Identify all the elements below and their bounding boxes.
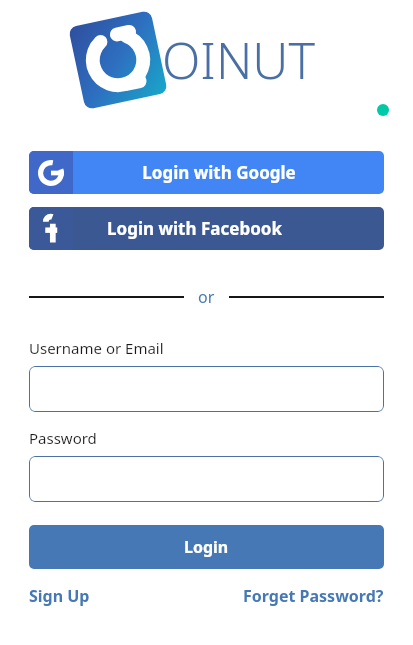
staticText: Sign Up	[29, 585, 90, 607]
staticText: or	[198, 286, 215, 308]
button[interactable]	[29, 456, 384, 502]
staticText: Password	[29, 428, 97, 448]
button[interactable]: Login with Google	[29, 151, 384, 194]
staticText: Login	[184, 536, 229, 558]
button[interactable]: Forget Password?	[243, 585, 384, 607]
staticText: Login with Google	[142, 161, 296, 184]
button[interactable]: Sign Up	[29, 585, 90, 607]
button[interactable]	[29, 366, 384, 412]
button[interactable]: Login	[29, 525, 384, 569]
staticText: Login with Facebook	[107, 217, 282, 240]
staticText: OINUT	[162, 26, 315, 94]
staticText: Forget Password?	[243, 585, 384, 607]
button[interactable]: Login with Facebook	[29, 207, 384, 250]
staticText: Username or Email	[29, 338, 164, 358]
